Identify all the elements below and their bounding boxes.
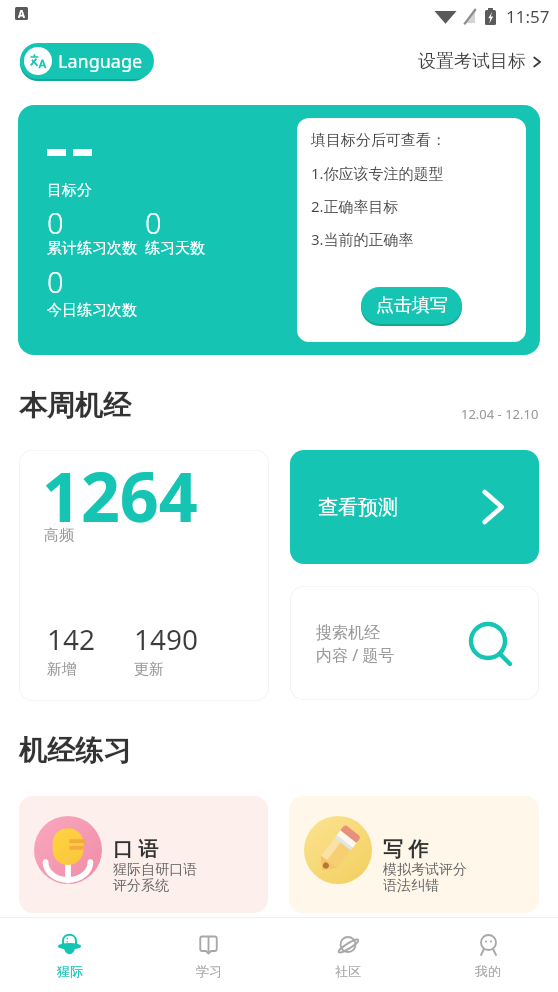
button[interactable]: 写 作	[289, 796, 539, 913]
button[interactable]: 设置考试目标	[418, 50, 544, 73]
staticText: 1490	[134, 620, 199, 658]
staticText: 机经练习	[19, 733, 131, 768]
staticText: 1264	[42, 450, 198, 542]
staticText: 今日练习次数	[47, 301, 137, 320]
staticText: 目标分	[47, 181, 92, 200]
staticText: 0	[145, 203, 162, 242]
button[interactable]: 口 语	[19, 796, 268, 913]
button[interactable]: 搜索机经内容 / 题号	[290, 586, 539, 700]
staticText: 内容 / 题号	[316, 644, 395, 666]
staticText: 设置考试目标	[418, 50, 526, 73]
staticText: 搜索机经	[316, 623, 380, 643]
staticText: 口 语	[113, 835, 159, 862]
staticText: 填目标分后可查看：	[311, 131, 446, 150]
staticText: 练习天数	[145, 239, 205, 258]
button[interactable]: 猩际	[0, 918, 139, 992]
staticText: 2.正确率目标	[311, 196, 399, 216]
staticText: 社区	[335, 963, 361, 979]
staticText: Language	[58, 49, 143, 74]
staticText: 1.你应该专注的题型	[311, 163, 444, 183]
staticText: 我的	[475, 963, 501, 979]
button[interactable]: 查看预测	[290, 450, 539, 564]
staticText: 高频	[44, 526, 74, 545]
button[interactable]: Language	[20, 43, 154, 79]
staticText: 学习	[196, 963, 222, 979]
staticText: 本周机经	[19, 388, 131, 423]
staticText: 猩际	[57, 963, 83, 979]
staticText: 11:57	[506, 5, 550, 28]
button[interactable]: 我的	[418, 918, 558, 992]
staticText: 142	[47, 620, 96, 658]
button[interactable]: 社区	[278, 918, 418, 992]
staticText: 查看预测	[318, 495, 398, 520]
button[interactable]: 1264	[19, 450, 269, 701]
staticText: 新增	[47, 660, 77, 679]
button[interactable]: 点击填写	[361, 287, 462, 324]
staticText: 12.04 - 12.10	[461, 405, 539, 423]
staticText: 累计练习次数	[47, 239, 137, 258]
staticText: 模拟考试评分	[383, 861, 467, 879]
staticText: A	[18, 7, 25, 20]
staticText: 评分系统	[113, 877, 169, 895]
staticText: 写 作	[383, 835, 429, 862]
staticText: 点击填写	[376, 294, 448, 317]
staticText: 语法纠错	[383, 877, 439, 895]
button[interactable]: 学习	[139, 918, 278, 992]
staticText: 0	[47, 203, 64, 242]
staticText: 3.当前的正确率	[311, 229, 414, 249]
staticText: 0	[47, 262, 64, 301]
staticText: 猩际自研口语	[113, 861, 197, 879]
staticText: 更新	[134, 660, 164, 679]
